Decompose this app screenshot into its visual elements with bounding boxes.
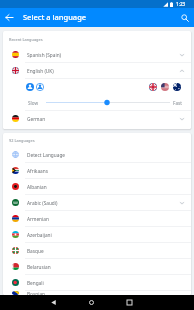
staticText: English (UK) [27,68,54,74]
button[interactable]: Australia [173,83,181,91]
button[interactable]: English (UK) [3,63,191,78]
button[interactable]: Bengali [3,275,191,290]
staticText: Albanian [27,184,47,190]
button[interactable]: Detect Language [3,147,191,162]
staticText: Select a language [23,12,87,22]
button[interactable]: Recent apps [122,295,137,310]
staticText: German [27,116,46,122]
button[interactable]: Albanian [3,179,191,194]
staticText: Arabic (Saudi) [27,200,58,206]
staticText: Recent Languages [9,37,43,42]
button[interactable]: Belarusian [3,259,191,274]
staticText: 1:23 [176,1,186,7]
staticText: Fast [173,100,182,106]
button[interactable]: Home [84,295,99,310]
button[interactable]: Female voice [36,83,44,91]
staticText: Detect Language [27,152,65,158]
button[interactable]: United Kingdom [149,83,157,91]
button[interactable]: Navigate up [0,8,19,27]
button[interactable]: Afrikaans [3,163,191,178]
button[interactable]: Azerbaijani [3,227,191,242]
staticText: 92 Languages [9,138,35,143]
staticText: Bosnian [27,291,45,295]
staticText: Belarusian [27,264,51,270]
button[interactable]: Arabic (Saudi) [3,195,191,210]
staticText: Armenian [27,216,49,222]
staticText: Slow [28,100,39,106]
button[interactable]: German [3,111,191,126]
staticText: Basque [27,248,44,254]
button[interactable]: United States [161,83,169,91]
staticText: Afrikaans [27,168,48,174]
staticText: Spanish (Spain) [27,52,62,58]
staticText: Bengali [27,280,44,286]
button[interactable]: Spanish (Spain) [3,47,191,62]
button[interactable]: Basque [3,243,191,258]
button[interactable]: Back [46,295,61,310]
button[interactable]: Search [175,8,194,27]
staticText: Azerbaijani [27,232,52,238]
button[interactable]: Armenian [3,211,191,226]
button[interactable]: Speech rate [46,99,170,106]
button[interactable]: Male voice [26,83,34,91]
button[interactable]: Bosnian [3,291,191,295]
